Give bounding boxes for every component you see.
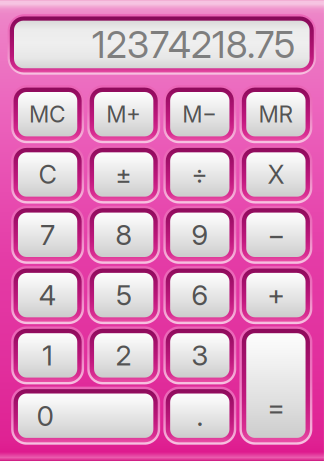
button[interactable]: 2	[87, 326, 160, 384]
button[interactable]: +	[239, 266, 312, 324]
staticText: X	[267, 159, 284, 190]
button[interactable]: −	[239, 206, 312, 264]
staticText: ±	[115, 159, 132, 190]
button[interactable]: .	[163, 387, 236, 445]
staticText: MC	[29, 100, 66, 128]
staticText: 8	[115, 218, 132, 252]
staticText: 9	[191, 218, 208, 252]
button[interactable]: 1	[11, 326, 84, 384]
staticText: 1	[42, 338, 53, 372]
button[interactable]: 9	[163, 206, 236, 264]
button[interactable]: 3	[163, 326, 236, 384]
button[interactable]: 6	[163, 266, 236, 324]
staticText: −	[267, 218, 285, 252]
staticText: 3	[191, 338, 208, 372]
staticText: +	[267, 278, 285, 312]
staticText: ÷	[191, 159, 208, 190]
staticText: 5	[116, 278, 132, 312]
button[interactable]: MC	[11, 85, 84, 143]
button[interactable]: 8	[87, 206, 160, 264]
staticText: 0	[37, 399, 54, 433]
button[interactable]: =	[239, 326, 312, 445]
staticText: M+	[106, 100, 141, 128]
staticText: .	[196, 399, 203, 433]
staticText: M−	[182, 100, 217, 128]
staticText: 4	[39, 278, 57, 312]
staticText: 6	[191, 278, 208, 312]
staticText: 12374218.75	[92, 22, 296, 67]
staticText: 2	[115, 338, 132, 372]
button[interactable]: 4	[11, 266, 84, 324]
staticText: C	[39, 159, 57, 190]
button[interactable]: ÷	[163, 145, 236, 203]
button[interactable]: MR	[239, 85, 312, 143]
button[interactable]: 5	[87, 266, 160, 324]
button[interactable]: ±	[87, 145, 160, 203]
staticText: =	[267, 390, 285, 424]
button[interactable]: 7	[11, 206, 84, 264]
button[interactable]: 0	[11, 387, 160, 445]
button[interactable]: M−	[163, 85, 236, 143]
button[interactable]: M+	[87, 85, 160, 143]
button[interactable]: X	[239, 145, 312, 203]
staticText: 7	[40, 218, 55, 252]
button[interactable]: C	[11, 145, 84, 203]
staticText: MR	[258, 100, 293, 128]
